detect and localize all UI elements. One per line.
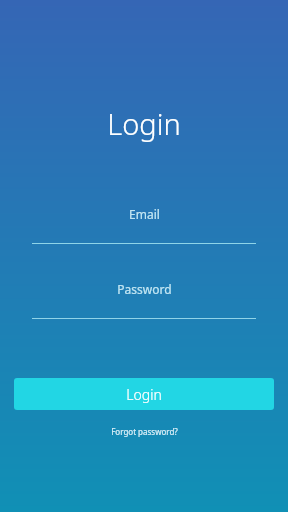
button[interactable]: Forgot password? <box>103 424 186 439</box>
staticText: Login <box>126 385 162 404</box>
staticText: Email <box>129 206 160 222</box>
button[interactable]: Login <box>14 378 274 410</box>
button[interactable]: Password <box>32 281 256 319</box>
button[interactable]: Email <box>32 206 256 244</box>
staticText: Login <box>107 104 181 143</box>
staticText: Password <box>117 281 172 297</box>
staticText: Forgot password? <box>111 426 178 437</box>
